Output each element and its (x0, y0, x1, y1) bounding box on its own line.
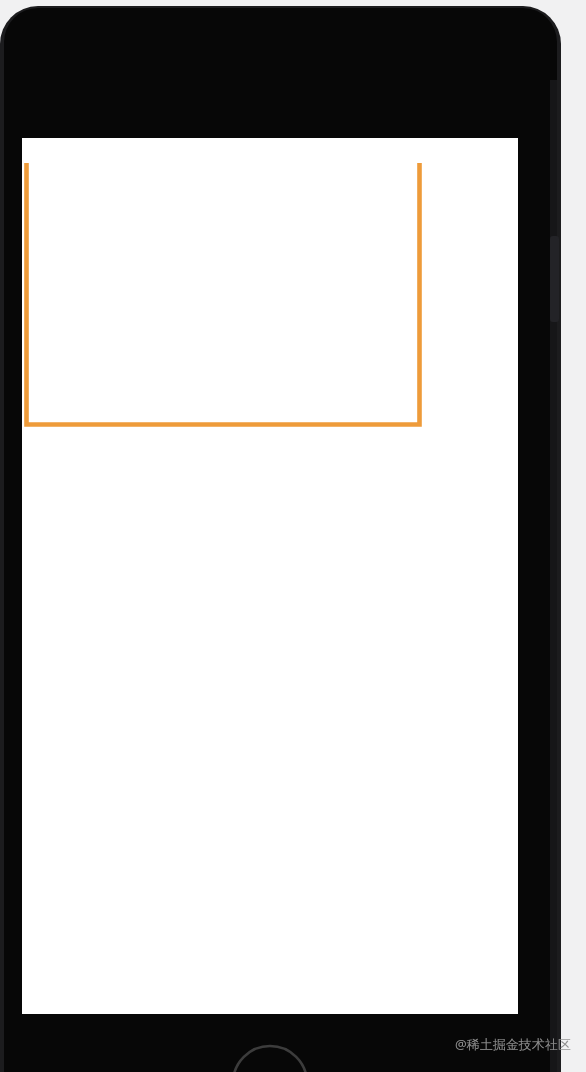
button[interactable]: Home (233, 1046, 307, 1072)
staticText: @稀土掘金技术社区 (455, 1035, 571, 1053)
button[interactable]: App screen (22, 138, 518, 1014)
